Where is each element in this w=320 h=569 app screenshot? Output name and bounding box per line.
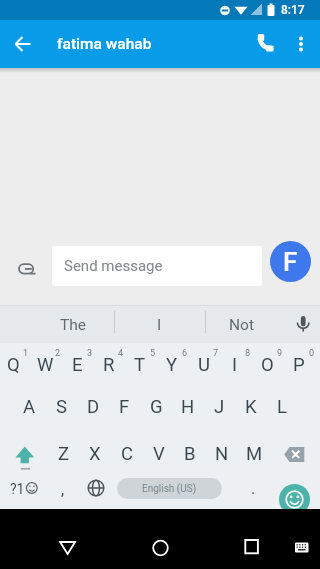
button[interactable]: X xyxy=(79,433,111,474)
staticText: S xyxy=(56,396,67,418)
button[interactable] xyxy=(11,250,45,284)
button[interactable] xyxy=(25,480,39,496)
staticText: G xyxy=(150,396,163,418)
button[interactable] xyxy=(279,484,310,509)
button[interactable]: G xyxy=(140,386,172,427)
button[interactable]: N xyxy=(206,433,238,474)
staticText: N xyxy=(215,443,229,465)
staticText: E xyxy=(72,354,83,376)
button[interactable]: Send message xyxy=(52,246,262,286)
button[interactable]: The xyxy=(43,306,103,343)
button[interactable]: E xyxy=(61,344,93,385)
button[interactable]: Not xyxy=(211,306,271,343)
staticText: X xyxy=(89,443,101,465)
button[interactable]: English (US) xyxy=(117,478,222,499)
staticText: L xyxy=(277,396,287,418)
button[interactable] xyxy=(7,28,39,60)
staticText: I xyxy=(232,354,238,376)
staticText: A xyxy=(23,396,36,418)
button[interactable]: U xyxy=(188,344,220,385)
staticText: W xyxy=(37,354,54,376)
staticText: U xyxy=(198,354,210,376)
button[interactable] xyxy=(48,528,88,568)
button[interactable]: H xyxy=(172,386,204,427)
button[interactable] xyxy=(288,533,320,561)
staticText: D xyxy=(87,396,100,418)
staticText: 4 xyxy=(118,348,124,359)
staticText: B xyxy=(184,443,196,465)
button[interactable]: S xyxy=(45,386,77,427)
button[interactable]: C xyxy=(111,433,143,474)
button[interactable]: T xyxy=(124,344,156,385)
button[interactable]: J xyxy=(203,386,235,427)
button[interactable]: A xyxy=(13,386,45,427)
staticText: 5 xyxy=(150,348,156,359)
button[interactable] xyxy=(80,472,112,504)
button[interactable]: I xyxy=(219,344,251,385)
staticText: 1 xyxy=(23,348,29,359)
staticText: F xyxy=(119,396,130,418)
staticText: English (US) xyxy=(142,483,197,495)
staticText: C xyxy=(121,443,134,465)
staticText: . xyxy=(251,479,256,498)
button[interactable]: , xyxy=(48,477,78,501)
staticText: T xyxy=(134,354,146,376)
staticText: Send message xyxy=(64,257,163,275)
button[interactable] xyxy=(287,306,320,343)
staticText: F xyxy=(283,247,298,277)
staticText: fatima wahab xyxy=(57,35,152,53)
staticText: V xyxy=(153,443,165,465)
staticText: 3 xyxy=(87,348,93,359)
button[interactable]: P xyxy=(283,344,315,385)
button[interactable]: O xyxy=(251,344,283,385)
button[interactable] xyxy=(248,28,280,60)
staticText: R xyxy=(103,354,115,376)
staticText: 9 xyxy=(277,348,283,359)
staticText: 7 xyxy=(213,348,219,359)
button[interactable]: V xyxy=(143,433,175,474)
staticText: H xyxy=(181,396,195,418)
button[interactable] xyxy=(8,436,42,472)
button[interactable]: W xyxy=(29,344,61,385)
staticText: J xyxy=(214,396,225,418)
button[interactable]: R xyxy=(93,344,125,385)
staticText: 8 xyxy=(245,348,251,359)
staticText: 2 xyxy=(55,348,61,359)
staticText: P xyxy=(293,354,305,376)
button[interactable]: I xyxy=(129,306,189,343)
button[interactable] xyxy=(140,528,180,568)
staticText: 8:17 xyxy=(281,3,305,17)
button[interactable]: F xyxy=(270,241,311,282)
button[interactable]: Y xyxy=(156,344,188,385)
button[interactable]: L xyxy=(266,386,298,427)
staticText: K xyxy=(245,396,257,418)
button[interactable]: F xyxy=(108,386,140,427)
button[interactable]: ?1 xyxy=(2,474,32,504)
staticText: I xyxy=(157,316,162,334)
button[interactable] xyxy=(232,528,272,568)
button[interactable] xyxy=(287,28,315,60)
button[interactable]: Q xyxy=(0,344,29,385)
button[interactable]: D xyxy=(77,386,109,427)
staticText: Z xyxy=(58,443,70,465)
staticText: 6 xyxy=(182,348,188,359)
button[interactable]: Z xyxy=(48,433,80,474)
button[interactable]: B xyxy=(174,433,206,474)
button[interactable]: . xyxy=(238,474,268,502)
button[interactable] xyxy=(278,438,312,470)
button[interactable]: M xyxy=(238,433,270,474)
staticText: ?1 xyxy=(10,481,25,497)
staticText: Not xyxy=(229,316,254,334)
staticText: O xyxy=(261,354,274,376)
staticText: Y xyxy=(166,354,178,376)
staticText: Q xyxy=(7,354,20,376)
staticText: M xyxy=(246,443,263,465)
staticText: 0 xyxy=(309,348,315,359)
staticText: , xyxy=(61,480,65,499)
button[interactable]: K xyxy=(235,386,267,427)
staticText: The xyxy=(60,316,87,334)
